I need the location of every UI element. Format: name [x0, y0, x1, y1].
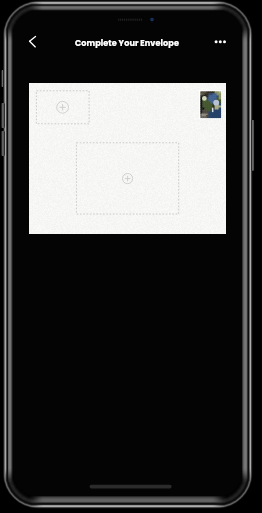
- button[interactable]: More options: [208, 30, 234, 54]
- staticText: Complete Your Envelope: [12, 37, 242, 51]
- button[interactable]: Back: [20, 30, 46, 56]
